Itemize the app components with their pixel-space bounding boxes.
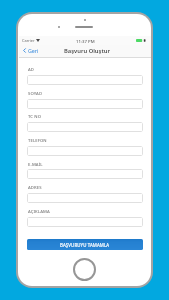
button[interactable] xyxy=(27,217,143,227)
staticText: Başvuru Oluştur xyxy=(64,47,110,55)
staticText: AÇIKLAMA xyxy=(28,209,50,215)
staticText: E-MAİL xyxy=(28,162,43,168)
staticText: 11:37 PM xyxy=(76,38,95,44)
staticText: SOYAD xyxy=(28,91,43,97)
staticText: AD xyxy=(28,67,35,73)
button[interactable] xyxy=(27,169,143,179)
staticText: Carrier xyxy=(22,38,35,43)
staticText: BAŞVURUYU TAMAMLA xyxy=(60,242,110,248)
button[interactable] xyxy=(27,146,143,156)
staticText: TELEFON xyxy=(28,138,47,144)
staticText: TC NO xyxy=(28,114,42,120)
button[interactable] xyxy=(27,75,143,85)
staticText: Geri xyxy=(28,47,39,54)
staticText: ADRES xyxy=(28,185,42,191)
button[interactable]: BAŞVURUYU TAMAMLA xyxy=(27,239,143,250)
button[interactable] xyxy=(27,193,143,203)
button[interactable] xyxy=(27,99,143,109)
button[interactable]: Home xyxy=(73,258,96,281)
button[interactable]: Geri xyxy=(23,44,39,57)
button[interactable] xyxy=(27,122,143,132)
